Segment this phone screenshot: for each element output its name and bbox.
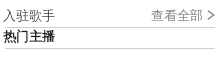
staticText: 热门主播 [3, 28, 55, 44]
button[interactable]: 入驻歌手 [0, 0, 222, 27]
other: View all [207, 10, 215, 20]
staticText: 入驻歌手 [3, 7, 55, 23]
staticText: 查看全部 [151, 7, 203, 23]
button[interactable]: 热门主播 [0, 28, 222, 48]
